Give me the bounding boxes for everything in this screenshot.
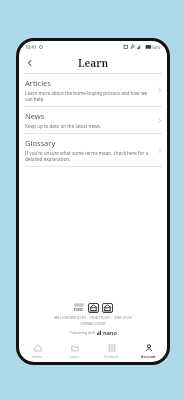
staticText: Contacts	[104, 354, 119, 359]
staticText: Account	[141, 354, 156, 359]
staticText: nano	[103, 329, 117, 336]
staticText: Loans	[69, 354, 80, 359]
staticText: Articles	[25, 78, 51, 88]
staticText: Keep up to date on the latest news.	[25, 123, 101, 129]
button[interactable]: Glossary	[19, 134, 167, 166]
staticText: If you're unsure what some terms mean, c…	[25, 150, 154, 162]
staticText: 10:41	[25, 44, 37, 50]
button[interactable]: Articles	[19, 74, 167, 106]
staticText: Learn more about the home-buying process…	[25, 90, 154, 102]
staticText: Partnering with	[70, 330, 97, 335]
staticText: Learn	[78, 56, 109, 70]
button[interactable]: Loans	[56, 340, 93, 362]
staticText: FDIC	[74, 307, 84, 313]
staticText: NMLS CONSUMER ACCESS | PRIVACY POLICY | …	[54, 316, 132, 320]
staticText: 100%	[151, 45, 161, 50]
button[interactable]: News	[19, 107, 167, 133]
button[interactable]: Account	[130, 340, 167, 362]
button[interactable]: Back	[22, 55, 38, 71]
button[interactable]: Contacts	[93, 340, 130, 362]
button[interactable]: Home	[19, 340, 56, 362]
staticText: SOFTWARE LICENSES	[80, 322, 106, 326]
staticText: Glossary	[25, 138, 56, 148]
staticText: Home	[32, 354, 43, 359]
staticText: News	[25, 111, 45, 121]
